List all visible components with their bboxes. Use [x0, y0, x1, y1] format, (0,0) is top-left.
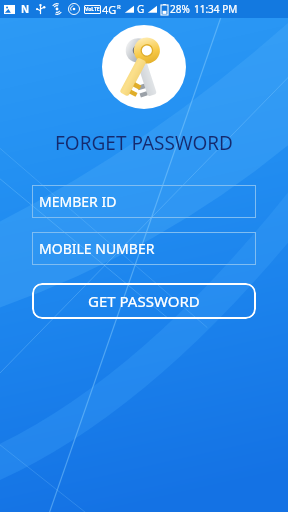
- staticText: 4G: [102, 2, 117, 17]
- staticText: 11:34 PM: [194, 2, 238, 16]
- staticText: 28%: [170, 2, 190, 16]
- staticText: G: [137, 2, 145, 16]
- staticText: GET PASSWORD: [88, 291, 200, 311]
- other: Keys: [102, 25, 186, 109]
- staticText: R: [117, 3, 121, 11]
- button[interactable]: MOBILE NUMBER: [32, 232, 256, 265]
- staticText: MOBILE NUMBER: [39, 239, 155, 258]
- button[interactable]: GET PASSWORD: [32, 283, 256, 319]
- staticText: VoLTE: [85, 6, 100, 13]
- staticText: N: [21, 2, 30, 16]
- staticText: FORGET PASSWORD: [55, 130, 233, 156]
- button[interactable]: MEMBER ID: [32, 185, 256, 218]
- staticText: MEMBER ID: [39, 192, 117, 211]
